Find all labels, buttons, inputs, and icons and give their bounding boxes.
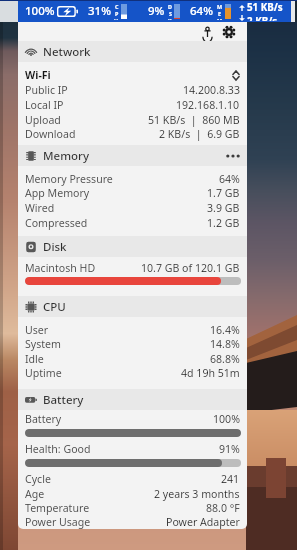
button[interactable]: CPU (18, 296, 247, 317)
staticText: 68.8% (210, 352, 240, 366)
staticText: Disk (43, 239, 67, 255)
staticText: Network (43, 44, 91, 60)
button[interactable]: 64% (190, 0, 231, 22)
staticText: Wired (25, 201, 55, 215)
button[interactable]: Network (18, 41, 247, 62)
staticText: System (25, 337, 61, 351)
button[interactable]: Wi-Fi (18, 67, 247, 82)
button[interactable]: Download (18, 126, 247, 141)
staticText: Wi-Fi (25, 68, 51, 82)
staticText: E (218, 10, 222, 17)
button[interactable]: Uptime (18, 365, 247, 380)
staticText: M (217, 3, 223, 10)
staticText: K (168, 17, 172, 20)
staticText: Macintosh HD (25, 261, 96, 275)
staticText: 192.168.1.10 (176, 98, 240, 112)
staticText: CPU (43, 299, 66, 315)
button[interactable]: Memory Pressure (18, 171, 247, 186)
staticText: 3.9 GB (207, 201, 240, 215)
staticText: App Memory (25, 186, 90, 200)
staticText: Health: Good (25, 442, 91, 456)
button[interactable]: 100% (25, 0, 78, 22)
staticText: 2 years 3 months (154, 487, 240, 501)
button[interactable]: Health: Good (18, 441, 247, 456)
staticText: 64% (190, 3, 213, 19)
staticText: Age (25, 487, 45, 501)
staticText: 14.200.8.33 (183, 83, 240, 97)
staticText: Power Usage (25, 515, 91, 529)
button[interactable]: Disk (18, 236, 247, 257)
staticText: Cycle (25, 472, 51, 486)
button[interactable]: Temperature (18, 500, 247, 515)
button[interactable]: Macintosh HD (18, 260, 247, 275)
button[interactable]: System (18, 336, 247, 351)
button[interactable]: 9% (148, 0, 180, 22)
staticText: 64% (219, 172, 240, 186)
staticText: 1.2 GB (207, 216, 240, 230)
staticText: 1.7 GB (207, 186, 240, 200)
button[interactable]: Age (18, 486, 247, 501)
staticText: Memory Pressure (25, 172, 113, 186)
button[interactable]: Local IP (18, 97, 247, 112)
staticText: 51 KB/s | 860 MB (148, 113, 240, 127)
staticText: 16.4% (210, 323, 240, 337)
staticText: M (217, 17, 223, 20)
staticText: 51 KB/s (247, 1, 283, 14)
staticText: Power Adapter (166, 515, 240, 529)
staticText: C (115, 3, 119, 10)
staticText: U (114, 17, 119, 20)
staticText: Memory (43, 148, 90, 164)
staticText: Battery (43, 392, 84, 408)
staticText: 10.7 GB of 120.1 GB (141, 261, 240, 275)
staticText: 14.8% (210, 337, 240, 351)
button[interactable]: Wired (18, 200, 247, 215)
staticText: Public IP (25, 83, 68, 97)
button[interactable]: Power Usage (18, 514, 247, 529)
staticText: Battery (25, 412, 62, 426)
button[interactable]: Memory (18, 145, 247, 166)
button[interactable]: Public IP (18, 82, 247, 97)
button[interactable]: Cycle (18, 471, 247, 486)
button[interactable]: Compressed (18, 215, 247, 230)
staticText: 100% (213, 412, 240, 426)
staticText: Download (25, 127, 76, 141)
staticText: Compressed (25, 216, 88, 230)
staticText: 4d 19h 51m (181, 366, 240, 380)
staticText: Temperature (25, 501, 90, 515)
button[interactable]: Pin panel (199, 24, 215, 40)
staticText: 2 KB/s (247, 15, 278, 21)
button[interactable]: 51 KB/s (239, 0, 283, 22)
button[interactable]: Battery (18, 411, 247, 426)
staticText: 2 KB/s | 6.9 GB (159, 127, 240, 141)
staticText: D (168, 3, 172, 10)
button[interactable]: Battery (18, 389, 247, 410)
staticText: User (25, 323, 49, 337)
button[interactable]: User (18, 322, 247, 337)
staticText: 9% (148, 3, 165, 19)
button[interactable]: Idle (18, 351, 247, 366)
staticText: Uptime (25, 366, 62, 380)
staticText: 241 (221, 472, 240, 486)
staticText: Local IP (25, 98, 64, 112)
staticText: Upload (25, 113, 61, 127)
button[interactable]: Upload (18, 112, 247, 127)
button[interactable]: 31% (88, 0, 127, 22)
staticText: 100% (25, 3, 55, 19)
button[interactable]: Settings (221, 24, 237, 40)
staticText: Idle (25, 352, 44, 366)
staticText: 88.0 °F (206, 501, 240, 515)
staticText: P (115, 10, 119, 17)
button[interactable]: App Memory (18, 185, 247, 200)
staticText: 31% (88, 3, 111, 19)
staticText: 91% (219, 442, 240, 456)
staticText: S (169, 10, 172, 17)
